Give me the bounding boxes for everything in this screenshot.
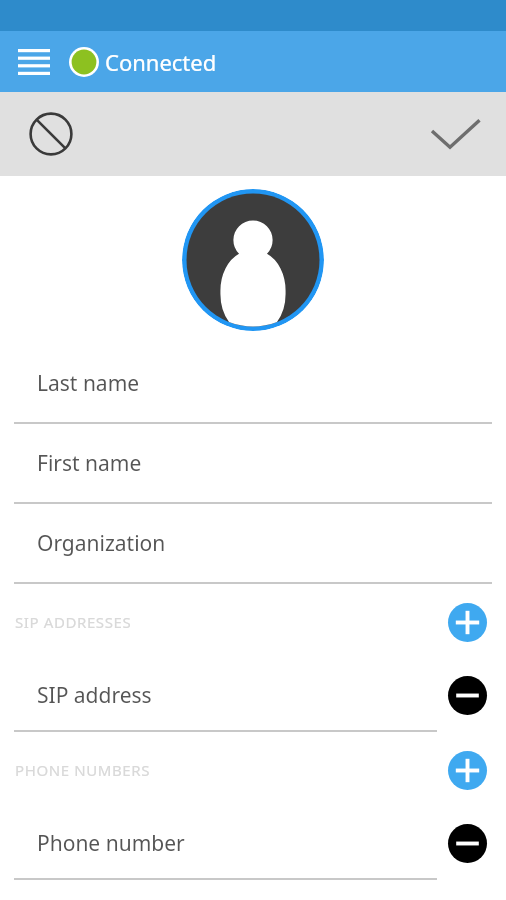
button[interactable]: Last name xyxy=(0,344,506,422)
staticText: Phone number xyxy=(37,829,185,858)
staticText: First name xyxy=(37,449,142,478)
staticText: SIP address xyxy=(37,681,152,710)
button[interactable]: Add PHONE NUMBERS xyxy=(444,747,490,793)
button[interactable]: Add SIP ADDRESSES xyxy=(444,599,490,645)
button[interactable]: Contact photo xyxy=(182,189,324,331)
button[interactable]: Save xyxy=(418,92,492,176)
staticText: Last name xyxy=(37,369,140,398)
button[interactable]: Organization xyxy=(0,504,506,582)
staticText: Connected xyxy=(105,47,217,77)
button[interactable]: Remove SIP address xyxy=(444,672,490,718)
staticText: PHONE NUMBERS xyxy=(15,760,150,780)
button[interactable]: SIP address xyxy=(0,660,430,730)
button[interactable]: Menu xyxy=(0,31,67,92)
button[interactable]: First name xyxy=(0,424,506,502)
staticText: SIP ADDRESSES xyxy=(15,612,132,632)
button[interactable]: Cancel xyxy=(14,92,88,176)
button[interactable]: Remove Phone number xyxy=(444,820,490,866)
staticText: Organization xyxy=(37,529,166,558)
button[interactable]: Phone number xyxy=(0,808,430,878)
